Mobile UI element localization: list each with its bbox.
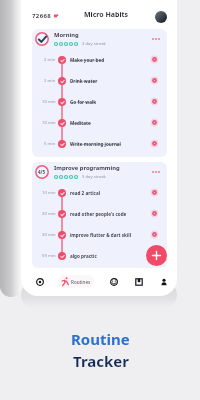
button[interactable]: Account bbox=[157, 275, 170, 288]
staticText: 10 min bbox=[42, 190, 56, 196]
staticText: 3 day streak bbox=[82, 174, 106, 180]
button[interactable]: 5 min bbox=[32, 133, 167, 154]
button[interactable]: Home bbox=[33, 275, 46, 288]
staticText: 5 min bbox=[44, 141, 56, 147]
staticText: 3 day streak bbox=[82, 41, 106, 47]
staticText: Tracker bbox=[73, 351, 129, 371]
button[interactable]: 4/5 bbox=[35, 162, 162, 182]
staticText: 10 min bbox=[42, 99, 56, 105]
staticText: Go for walk bbox=[70, 99, 97, 105]
staticText: Micro Habits bbox=[84, 10, 129, 20]
staticText: read 2 artical bbox=[70, 190, 101, 196]
button[interactable]: Toggle read other people's code bbox=[150, 209, 159, 218]
staticText: 20 min bbox=[42, 211, 56, 217]
button[interactable]: Morning bbox=[35, 29, 162, 49]
button[interactable]: Toggle improve flutter & dart skill bbox=[150, 230, 159, 239]
button[interactable]: 10 min bbox=[32, 182, 167, 203]
button[interactable]: Routines bbox=[58, 275, 94, 288]
staticText: improve flutter & dart skill bbox=[70, 232, 132, 238]
button[interactable]: 59 min bbox=[32, 245, 167, 266]
button[interactable]: 10 min bbox=[32, 112, 167, 133]
button[interactable]: Mood bbox=[107, 275, 120, 288]
staticText: 30 min bbox=[42, 232, 56, 238]
button[interactable]: Toggle algo practic bbox=[150, 251, 159, 260]
staticText: Drink water bbox=[70, 78, 98, 84]
staticText: Improve programming bbox=[54, 164, 120, 172]
staticText: 72668 bbox=[32, 12, 52, 20]
staticText: Routine bbox=[71, 329, 130, 349]
staticText: 59 min bbox=[42, 253, 56, 259]
staticText: Routines bbox=[71, 279, 91, 285]
button[interactable]: Toggle Make your bed bbox=[150, 55, 159, 64]
button[interactable]: More options bbox=[150, 33, 162, 45]
staticText: read other people's code bbox=[70, 211, 127, 217]
button[interactable]: Journal bbox=[132, 275, 145, 288]
button[interactable]: Toggle Go for walk bbox=[150, 97, 159, 106]
button[interactable]: More options bbox=[150, 166, 162, 178]
button[interactable]: Toggle read 2 artical bbox=[150, 188, 159, 197]
button[interactable]: Toggle Drink water bbox=[150, 76, 159, 85]
button[interactable]: 30 min bbox=[32, 224, 167, 245]
staticText: 4/5 bbox=[38, 169, 46, 175]
staticText: Morning bbox=[54, 31, 79, 39]
button[interactable]: Add habit bbox=[146, 245, 167, 266]
button[interactable]: 2 min bbox=[32, 49, 167, 70]
button[interactable]: 20 min bbox=[32, 203, 167, 224]
staticText: 2 min bbox=[44, 57, 56, 63]
staticText: algo practic bbox=[70, 253, 97, 259]
button[interactable]: Toggle Write morning journal bbox=[150, 139, 159, 148]
staticText: Write morning journal bbox=[70, 141, 121, 147]
button[interactable]: Profile bbox=[155, 11, 167, 23]
button[interactable]: Toggle Meditate bbox=[150, 118, 159, 127]
staticText: 2 min bbox=[44, 78, 56, 84]
staticText: Meditate bbox=[70, 120, 91, 126]
staticText: 10 min bbox=[42, 120, 56, 126]
staticText: Make your bed bbox=[70, 57, 105, 63]
button[interactable]: 10 min bbox=[32, 91, 167, 112]
button[interactable]: 2 min bbox=[32, 70, 167, 91]
